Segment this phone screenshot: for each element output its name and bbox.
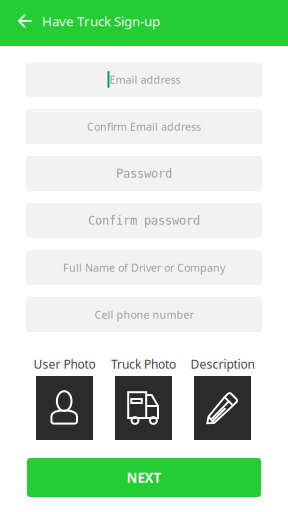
button[interactable]: NEXT: [27, 458, 261, 497]
staticText: Confirm password: [88, 214, 200, 227]
button[interactable]: Confirm Email address: [25, 109, 262, 144]
button[interactable]: User Photo: [36, 376, 93, 440]
staticText: Have Truck Sign-up: [42, 12, 160, 30]
staticText: Email address: [109, 72, 180, 87]
staticText: Cell phone number: [94, 307, 193, 322]
staticText: Full Name of Driver or Company: [63, 260, 225, 275]
staticText: Confirm Email address: [87, 119, 201, 134]
staticText: Description: [190, 356, 254, 372]
staticText: User Photo: [33, 356, 95, 372]
button[interactable]: Cell phone number: [25, 297, 262, 332]
button[interactable]: Truck Photo: [115, 376, 172, 440]
button[interactable]: Confirm password: [25, 203, 262, 238]
button[interactable]: Description: [194, 376, 251, 440]
button[interactable]: Full Name of Driver or Company: [25, 250, 262, 285]
button[interactable]: Back: [10, 6, 40, 36]
staticText: Truck Photo: [111, 356, 176, 372]
staticText: Password: [116, 167, 172, 180]
button[interactable]: Password: [25, 156, 262, 191]
staticText: NEXT: [126, 469, 161, 486]
button[interactable]: Email address: [25, 62, 262, 97]
